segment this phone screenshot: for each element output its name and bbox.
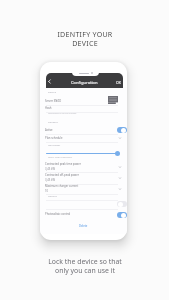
staticText: DEVICE xyxy=(48,91,57,94)
staticText: Contracted peak time power xyxy=(45,162,81,166)
staticText: Configuration xyxy=(71,80,98,86)
staticText: GENERAL xyxy=(48,121,59,124)
other: Back xyxy=(47,79,52,84)
staticText: Hash xyxy=(45,106,52,110)
staticText: 10 xyxy=(45,189,49,193)
staticText: Delete xyxy=(79,224,88,228)
staticText: Active xyxy=(45,128,53,132)
staticText: Contracted off-peak power xyxy=(45,173,79,177)
button[interactable]: Delete xyxy=(74,222,93,230)
button[interactable]: Toggle on xyxy=(117,212,127,218)
staticText: MAIN AREA CONTROL xyxy=(48,156,73,159)
staticText: Photovoltaic control xyxy=(45,212,71,216)
button[interactable]: Plan schedule xyxy=(45,134,118,142)
staticText: Generated id of the charger xyxy=(48,112,77,115)
button[interactable]: Configuration xyxy=(46,73,123,88)
staticText: Max power xyxy=(48,144,61,147)
button[interactable]: Hash xyxy=(45,104,118,112)
button[interactable]: Scan QR code xyxy=(108,96,118,104)
staticText: 3,45 kW xyxy=(45,178,55,182)
staticText: 3,45 kW xyxy=(45,167,55,171)
button[interactable]: Maximum charger current xyxy=(45,182,118,190)
button[interactable]: Contracted peak time power xyxy=(45,160,118,168)
button[interactable]: Active xyxy=(45,126,118,134)
staticText: OK xyxy=(116,80,122,85)
button[interactable]: Toggle on xyxy=(117,127,127,133)
staticText: Server SN/ID xyxy=(45,99,62,103)
button[interactable]: Contracted off-peak power xyxy=(45,171,118,179)
staticText: IDENTIFY YOUR DEVICE xyxy=(57,29,113,48)
button[interactable]: Toggle off xyxy=(117,201,127,207)
staticText: Lock the device so that only you can use… xyxy=(48,257,122,275)
button[interactable]: Server SN/ID xyxy=(45,97,118,105)
staticText: Maximum charger current xyxy=(45,184,79,188)
staticText: Options xyxy=(48,195,57,198)
button[interactable]: Photovoltaic control xyxy=(45,210,118,218)
button[interactable]: OK xyxy=(115,80,123,85)
staticText: Plan schedule xyxy=(45,136,63,140)
